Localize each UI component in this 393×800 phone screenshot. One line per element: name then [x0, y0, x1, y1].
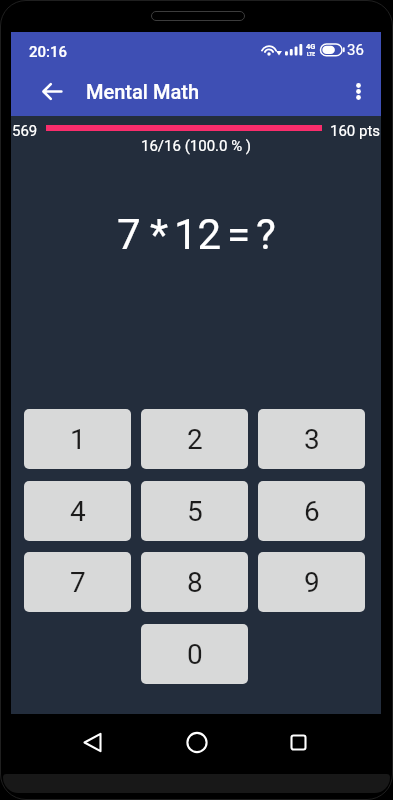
button[interactable] [335, 67, 381, 116]
staticText: 1 [70, 423, 86, 456]
staticText: * [150, 210, 169, 259]
staticText: 160 pts [330, 122, 381, 140]
button[interactable]: 7 [24, 552, 131, 612]
staticText: 3 [304, 423, 320, 456]
staticText: 0 [187, 638, 203, 671]
staticText: 4 [70, 495, 86, 528]
staticText: Mental Math [86, 80, 200, 103]
staticText: ? [256, 210, 276, 259]
button[interactable]: 2 [141, 409, 248, 469]
button[interactable] [169, 714, 225, 772]
staticText: = [227, 210, 251, 259]
button[interactable]: 0 [141, 624, 248, 684]
button[interactable]: 5 [141, 481, 248, 541]
button[interactable]: 8 [141, 552, 248, 612]
staticText: 4G [306, 42, 316, 51]
staticText: 5 [187, 495, 203, 528]
button[interactable]: 4 [24, 481, 131, 541]
staticText: 7 [117, 210, 141, 259]
button[interactable] [69, 714, 125, 772]
button[interactable] [29, 67, 77, 116]
staticText: LTE [307, 51, 316, 57]
button[interactable]: 9 [258, 552, 365, 612]
staticText: 2 [187, 423, 203, 456]
staticText: 6 [304, 495, 320, 528]
button[interactable] [270, 714, 326, 772]
staticText: 9 [304, 566, 320, 599]
staticText: 7 [70, 566, 86, 599]
staticText: 569 [12, 122, 38, 140]
staticText: 12 [174, 210, 222, 259]
staticText: 16/16 (100.0 % ) [141, 137, 252, 155]
button[interactable]: 1 [24, 409, 131, 469]
button[interactable]: 3 [258, 409, 365, 469]
staticText: 8 [187, 566, 203, 599]
staticText: 20:16 [29, 43, 68, 61]
button[interactable]: 6 [258, 481, 365, 541]
staticText: 36 [347, 41, 364, 59]
